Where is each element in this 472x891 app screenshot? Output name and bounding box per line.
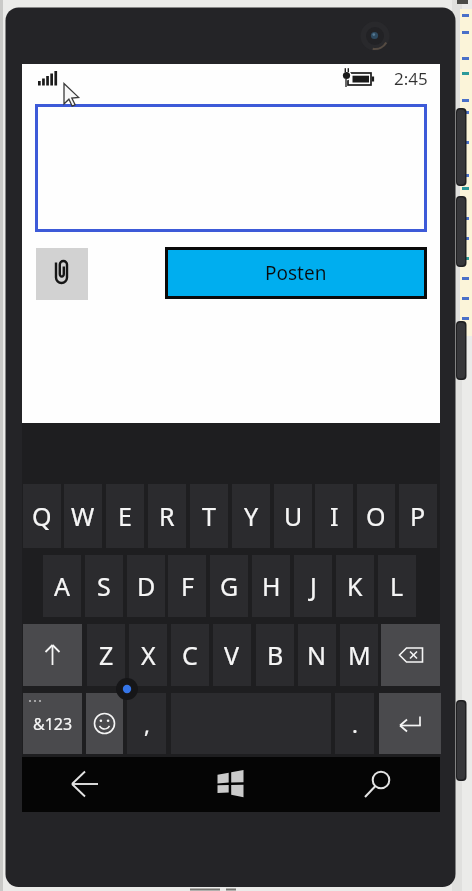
button[interactable]: G [210, 555, 248, 617]
button[interactable]: E [106, 484, 144, 548]
staticText: G [220, 569, 239, 603]
button[interactable]: . [335, 693, 374, 754]
button[interactable] [356, 763, 400, 805]
button[interactable]: I [315, 484, 353, 548]
button[interactable] [58, 763, 106, 805]
button[interactable]: Y [232, 484, 270, 548]
staticText: X [141, 638, 156, 672]
staticText: J [310, 569, 317, 603]
staticText: K [347, 569, 363, 603]
button[interactable]: X [129, 624, 167, 686]
staticText: C [182, 638, 198, 672]
button[interactable]: N [298, 624, 336, 686]
staticText: N [307, 638, 327, 672]
staticText: , [144, 709, 150, 739]
button[interactable]: , [127, 693, 166, 754]
button[interactable]: H [252, 555, 290, 617]
button[interactable]: S [85, 555, 123, 617]
staticText: D [137, 569, 156, 603]
staticText: Z [99, 638, 114, 672]
button[interactable]: D [127, 555, 165, 617]
button[interactable]: U [274, 484, 312, 548]
button[interactable]: Q [23, 484, 61, 548]
staticText: O [366, 499, 386, 533]
button[interactable] [86, 693, 123, 754]
staticText: M [348, 638, 371, 672]
staticText: T [202, 499, 216, 533]
staticText: W [71, 499, 95, 533]
staticText: U [284, 499, 303, 533]
staticText: H [262, 569, 281, 603]
staticText: P [410, 499, 426, 533]
button[interactable]: L [378, 555, 416, 617]
staticText: . [352, 709, 358, 739]
staticText: I [330, 499, 339, 533]
button[interactable] [379, 693, 441, 754]
button[interactable]: F [168, 555, 206, 617]
staticText: Q [32, 499, 52, 533]
staticText: R [159, 499, 175, 533]
staticText: Posten [265, 260, 327, 286]
staticText: V [224, 638, 240, 672]
staticText: Y [244, 499, 259, 533]
button[interactable]: &123 [23, 693, 82, 754]
staticText: L [390, 569, 404, 603]
staticText: &123 [33, 713, 73, 735]
button[interactable]: A [43, 555, 81, 617]
staticText: 2:45 [394, 67, 428, 90]
staticText: S [97, 569, 111, 603]
button[interactable]: J [294, 555, 332, 617]
button[interactable]: O [357, 484, 395, 548]
button[interactable]: T [190, 484, 228, 548]
button[interactable]: M [340, 624, 378, 686]
button[interactable] [381, 624, 440, 686]
button[interactable]: K [336, 555, 374, 617]
button[interactable]: Posten [165, 247, 427, 299]
button[interactable]: P [399, 484, 437, 548]
button[interactable]: Z [87, 624, 125, 686]
staticText: A [54, 569, 70, 603]
staticText: B [267, 638, 284, 672]
button[interactable] [210, 763, 252, 805]
button[interactable]: B [256, 624, 294, 686]
button[interactable]: R [148, 484, 186, 548]
button[interactable]: C [171, 624, 209, 686]
button[interactable]: V [213, 624, 251, 686]
staticText: E [118, 499, 132, 533]
staticText: F [181, 569, 194, 603]
button[interactable]: W [64, 484, 102, 548]
button[interactable] [23, 624, 82, 686]
button[interactable] [36, 248, 88, 300]
